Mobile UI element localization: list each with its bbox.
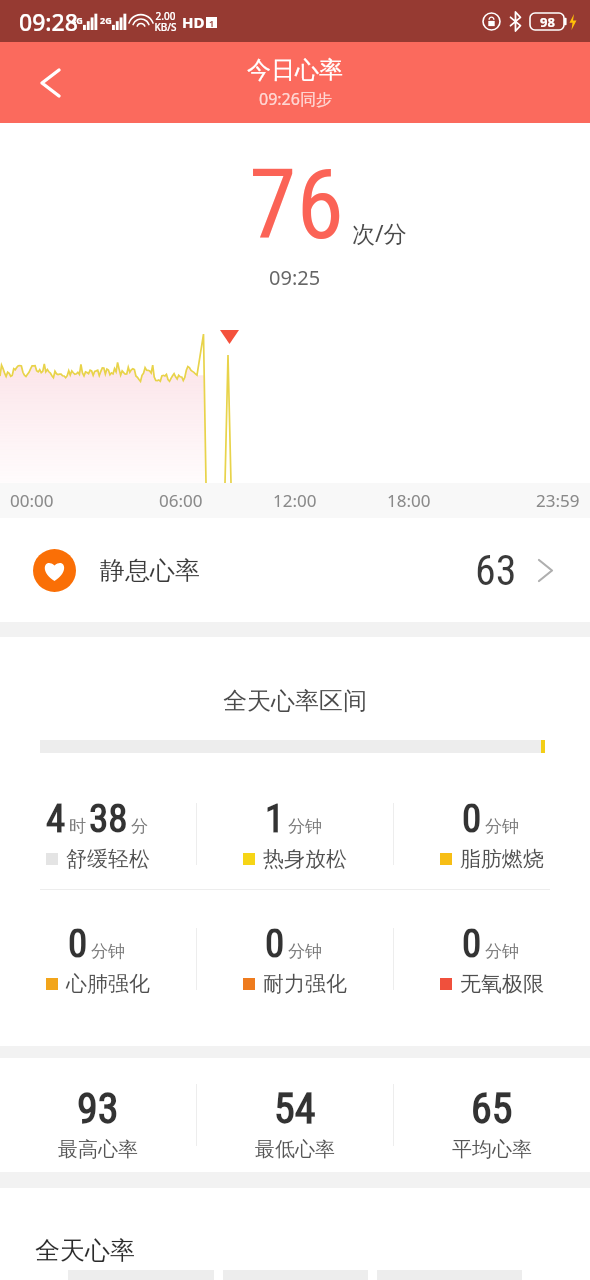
button[interactable]: 0 xyxy=(197,890,393,1028)
staticText: HD xyxy=(182,12,205,32)
staticText: 4G xyxy=(71,14,83,26)
button[interactable]: 93 xyxy=(0,1058,196,1172)
staticText: 4 xyxy=(46,796,66,842)
staticText: 0 xyxy=(462,796,482,842)
button[interactable]: 0 xyxy=(0,890,196,1028)
staticText: 次/分 xyxy=(352,217,407,248)
staticText: 1 xyxy=(209,17,215,28)
staticText: 0 xyxy=(462,921,482,967)
staticText: 00:00 xyxy=(10,489,54,512)
staticText: 54 xyxy=(274,1084,316,1133)
staticText: 分 xyxy=(131,816,148,837)
staticText: 无氧极限 xyxy=(460,971,544,997)
staticText: 分钟 xyxy=(485,816,519,837)
staticText: 分钟 xyxy=(288,816,322,837)
button[interactable]: 0 xyxy=(394,778,590,889)
staticText: 分钟 xyxy=(288,941,322,962)
staticText: 2G xyxy=(100,14,112,26)
staticText: 时 xyxy=(69,816,86,837)
button[interactable]: Heart rate chart xyxy=(0,308,590,483)
staticText: 最高心率 xyxy=(58,1137,138,1162)
staticText: 0 xyxy=(265,921,285,967)
staticText: 23:59 xyxy=(536,489,580,512)
staticText: 分钟 xyxy=(485,941,519,962)
button[interactable]: 静息心率 xyxy=(0,518,590,622)
staticText: 全天心率 xyxy=(35,1235,135,1266)
staticText: 舒缓轻松 xyxy=(66,846,150,872)
staticText: 93 xyxy=(77,1084,119,1133)
button[interactable]: 0 xyxy=(394,890,590,1028)
staticText: 65 xyxy=(471,1084,513,1133)
staticText: 18:00 xyxy=(387,489,431,512)
staticText: 09:25 xyxy=(269,264,321,291)
staticText: 2.00 KB/S xyxy=(154,9,177,34)
staticText: 98 xyxy=(540,13,555,31)
button[interactable]: Back xyxy=(0,42,72,123)
staticText: 1 xyxy=(265,796,285,842)
staticText: 热身放松 xyxy=(263,846,347,872)
staticText: 脂肪燃烧 xyxy=(460,846,544,872)
staticText: 76 xyxy=(249,149,344,262)
staticText: 63 xyxy=(475,546,517,595)
staticText: 0 xyxy=(68,921,88,967)
staticText: 12:00 xyxy=(273,489,317,512)
button[interactable]: 65 xyxy=(394,1058,590,1172)
staticText: 全天心率区间 xyxy=(223,686,367,716)
staticText: 09:28 xyxy=(19,6,78,37)
staticText: 最低心率 xyxy=(255,1137,335,1162)
staticText: 06:00 xyxy=(159,489,203,512)
staticText: 09:26同步 xyxy=(259,88,332,110)
staticText: 今日心率 xyxy=(247,55,343,85)
staticText: 耐力强化 xyxy=(263,971,347,997)
staticText: 分钟 xyxy=(91,941,125,962)
staticText: 心肺强化 xyxy=(66,971,150,997)
staticText: 38 xyxy=(89,796,128,842)
button[interactable]: 4 xyxy=(0,778,196,889)
staticText: 平均心率 xyxy=(452,1137,532,1162)
button[interactable]: 54 xyxy=(197,1058,393,1172)
button[interactable]: 1 xyxy=(197,778,393,889)
staticText: 静息心率 xyxy=(100,555,200,586)
